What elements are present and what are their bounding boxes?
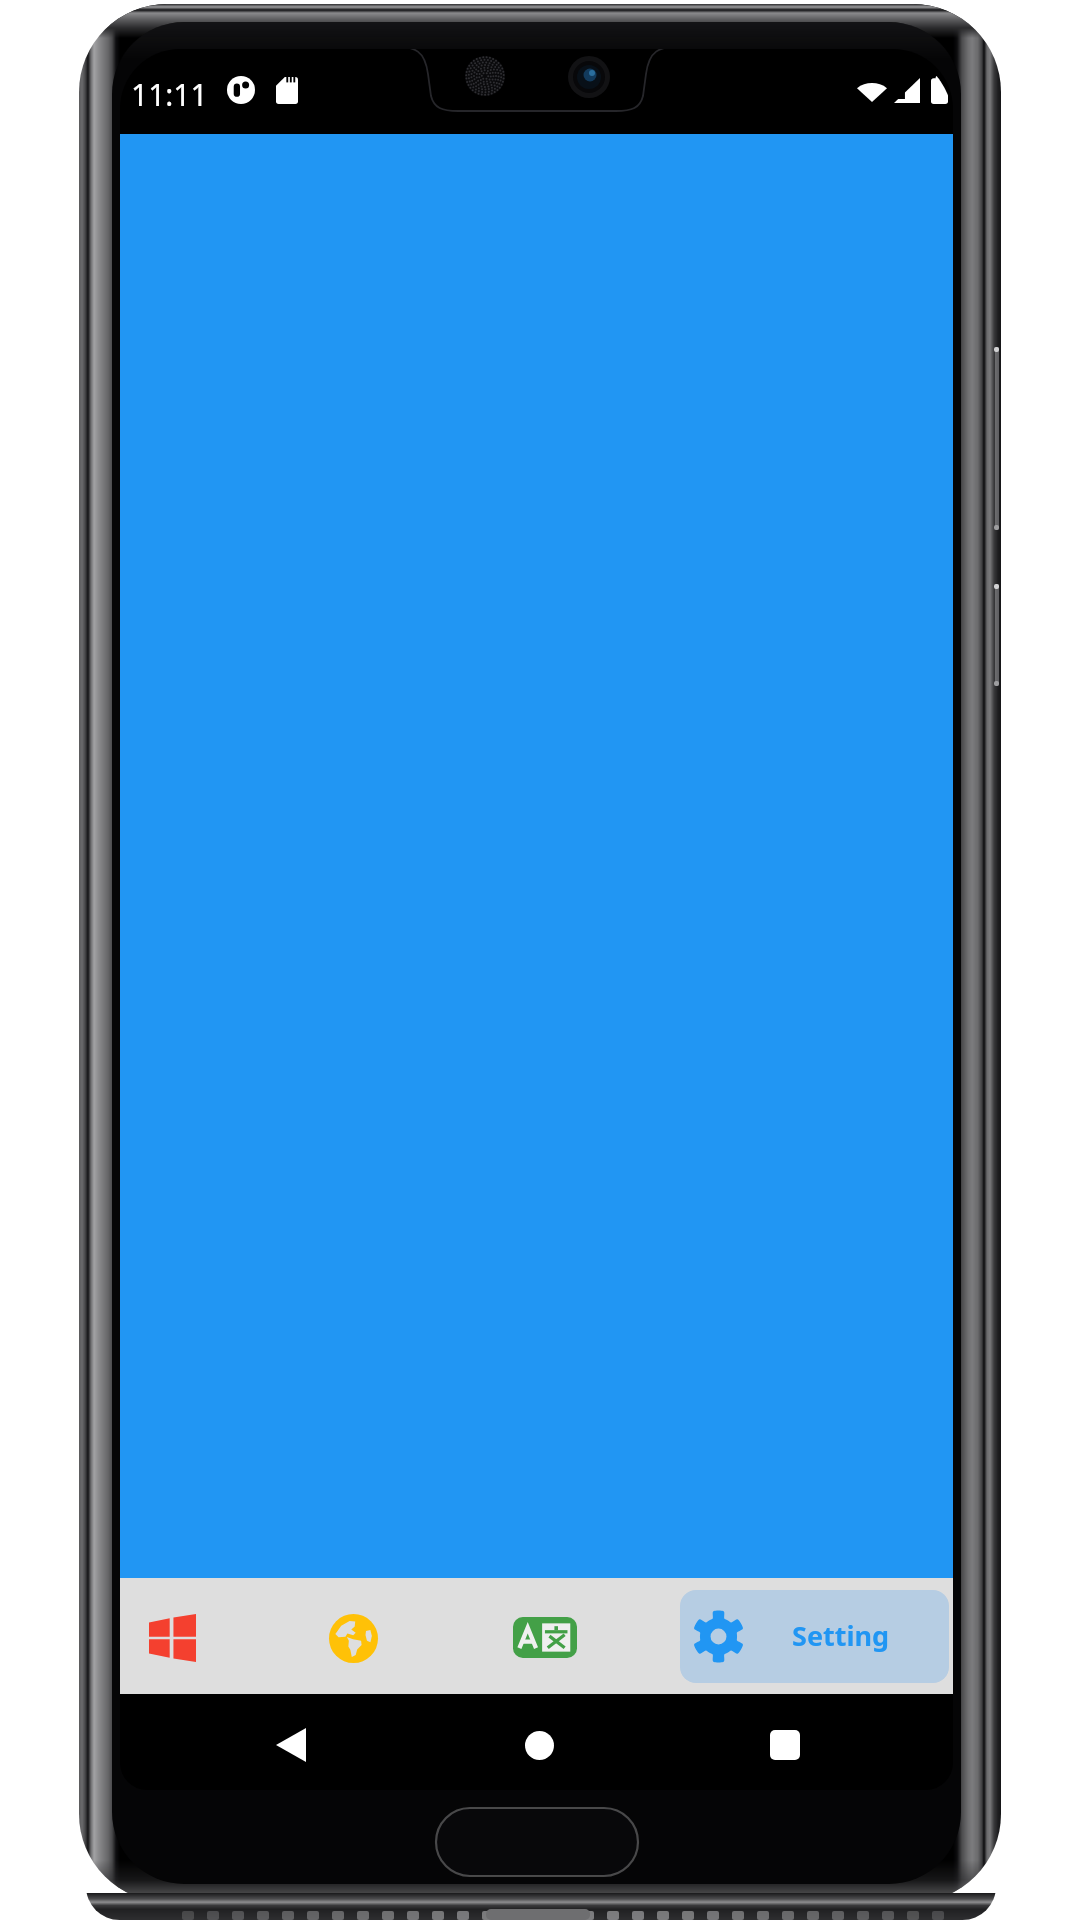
button[interactable]: Setting [680, 1590, 949, 1683]
button[interactable]: Recents [755, 1715, 815, 1775]
button[interactable]: Windows [132, 1598, 212, 1678]
button[interactable]: Translate [505, 1597, 585, 1677]
button[interactable]: Home [509, 1715, 569, 1775]
button[interactable]: Back [261, 1715, 321, 1775]
button[interactable]: Language [313, 1598, 393, 1678]
staticText: 11:11 [131, 74, 208, 115]
staticText: Setting [792, 1617, 890, 1654]
